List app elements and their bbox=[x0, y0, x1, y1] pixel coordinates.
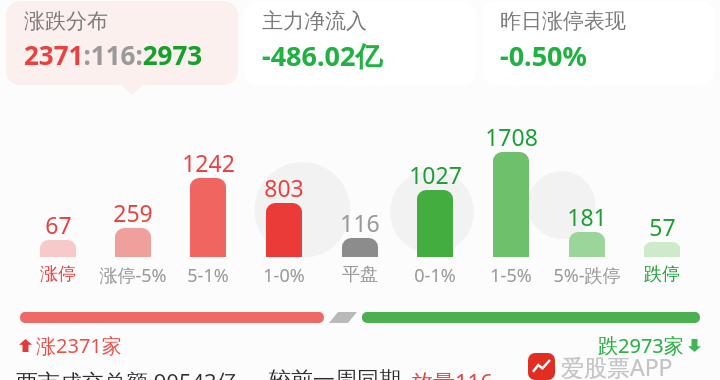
button[interactable]: 涨停 bbox=[13, 263, 103, 286]
staticText: 67 bbox=[45, 209, 72, 240]
staticText: 平盘 bbox=[342, 263, 378, 286]
button[interactable]: 5-1% bbox=[163, 263, 253, 288]
staticText: 涨跌分布 bbox=[24, 8, 108, 34]
button[interactable]: 5%-跌停 bbox=[542, 263, 632, 288]
button[interactable]: 昨日涨停表现 bbox=[482, 1, 714, 85]
button[interactable]: 涨停-5% bbox=[88, 263, 178, 288]
staticText: 跌2973家 bbox=[598, 332, 684, 359]
staticText: 1-0% bbox=[263, 263, 305, 288]
staticText: 主力净流入 bbox=[262, 8, 367, 34]
staticText: 1027 bbox=[409, 159, 462, 190]
staticText: 跌停 bbox=[644, 263, 680, 286]
staticText: -0.50% bbox=[500, 37, 587, 74]
staticText: 5%-跌停 bbox=[553, 263, 621, 288]
staticText: 803 bbox=[264, 172, 304, 203]
other: Advancing bbox=[18, 338, 33, 353]
staticText: 5-1% bbox=[187, 263, 229, 288]
staticText: 爱股票APP bbox=[561, 351, 673, 380]
button[interactable]: 1-0% bbox=[239, 263, 329, 288]
staticText: 259 bbox=[113, 197, 153, 228]
button[interactable]: 1-5% bbox=[466, 263, 556, 288]
button[interactable]: 跌停 bbox=[617, 263, 707, 286]
staticText: 57 bbox=[649, 211, 676, 242]
other: Declining bbox=[687, 338, 702, 353]
button[interactable]: Advancing bbox=[16, 330, 124, 361]
button[interactable]: 涨跌分布 bbox=[6, 1, 238, 85]
button[interactable]: App icon bbox=[528, 351, 673, 380]
button[interactable]: 0-1% bbox=[390, 263, 480, 288]
button[interactable]: 跌2973家 bbox=[596, 330, 704, 361]
other: App icon bbox=[528, 353, 555, 380]
staticText: 0-1% bbox=[414, 263, 456, 288]
staticText: 1-5% bbox=[490, 263, 532, 288]
staticText: 涨停 bbox=[40, 263, 76, 286]
button[interactable]: 主力净流入 bbox=[244, 1, 476, 85]
staticText: -486.02亿 bbox=[262, 37, 383, 74]
staticText: 181 bbox=[567, 201, 607, 232]
staticText: 放量116 bbox=[411, 366, 493, 380]
staticText: 较前一周同期 bbox=[269, 366, 401, 380]
staticText: 两市成交总额 90543亿 bbox=[16, 366, 239, 380]
staticText: 116 bbox=[340, 207, 380, 238]
staticText: 昨日涨停表现 bbox=[500, 8, 626, 34]
staticText: 涨2371家 bbox=[36, 332, 122, 359]
staticText: 1708 bbox=[485, 121, 538, 152]
staticText: 2371:116:2973 bbox=[24, 37, 203, 72]
staticText: 1242 bbox=[182, 147, 235, 178]
staticText: 涨停-5% bbox=[99, 263, 167, 288]
button[interactable]: 平盘 bbox=[315, 263, 405, 286]
